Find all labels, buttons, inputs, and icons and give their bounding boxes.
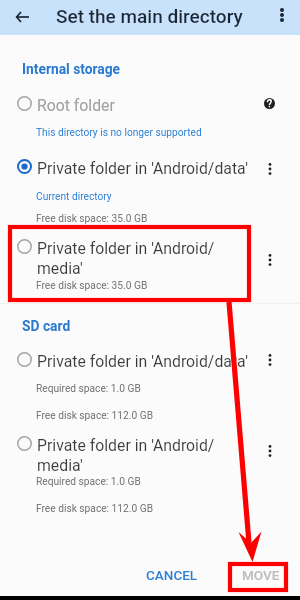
staticText: Free disk space: 35.0 GB bbox=[36, 213, 148, 225]
button[interactable]: More options bbox=[256, 346, 284, 374]
button[interactable]: More options bbox=[256, 246, 284, 274]
staticText: This directory is no longer supported bbox=[36, 127, 202, 139]
button[interactable]: More options bbox=[256, 437, 284, 465]
staticText: Set the main directory bbox=[56, 5, 243, 27]
staticText: Private folder in 'Android/data' bbox=[37, 159, 248, 178]
button[interactable] bbox=[0, 430, 300, 470]
button[interactable] bbox=[0, 233, 300, 273]
button[interactable]: MOVE bbox=[232, 561, 290, 589]
button[interactable] bbox=[0, 90, 300, 117]
staticText: Required space: 1.0 GB bbox=[36, 476, 141, 488]
staticText: MOVE bbox=[242, 567, 280, 583]
staticText: Free disk space: 112.0 GB bbox=[36, 503, 154, 515]
staticText: Private folder in 'Android/data' bbox=[37, 352, 248, 371]
staticText: Required space: 1.0 GB bbox=[36, 383, 141, 395]
staticText: Free disk space: 112.0 GB bbox=[36, 410, 154, 422]
button[interactable]: Help bbox=[256, 90, 283, 117]
staticText: Root folder bbox=[37, 96, 115, 115]
button[interactable] bbox=[0, 346, 300, 374]
staticText: Private folder in 'Android/ media' bbox=[37, 239, 215, 278]
button[interactable]: More options bbox=[256, 155, 284, 183]
staticText: Current directory bbox=[36, 191, 112, 203]
button[interactable]: CANCEL bbox=[137, 561, 207, 589]
button[interactable]: Navigate up bbox=[8, 2, 37, 31]
button[interactable] bbox=[0, 153, 300, 181]
staticText: CANCEL bbox=[146, 567, 198, 583]
staticText: SD card bbox=[22, 318, 71, 334]
staticText: Free disk space: 35.0 GB bbox=[36, 280, 148, 292]
button[interactable]: More options bbox=[268, 1, 296, 29]
staticText: Internal storage bbox=[22, 61, 121, 77]
staticText: Private folder in 'Android/ media' bbox=[37, 436, 215, 475]
